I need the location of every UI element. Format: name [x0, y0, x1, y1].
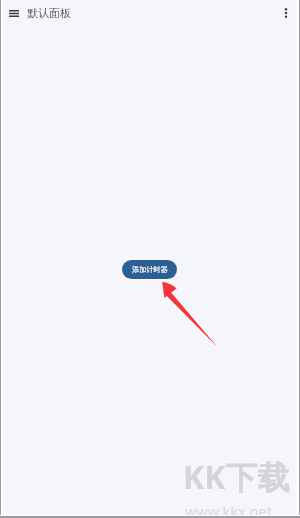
staticText: www.kkx.net	[185, 501, 272, 518]
staticText: KK下载	[183, 455, 290, 499]
staticText: 添加计时器	[132, 265, 168, 274]
button[interactable]: More options	[274, 1, 298, 25]
button[interactable]: 添加计时器	[122, 260, 177, 279]
staticText: 默认面板	[27, 6, 71, 20]
button[interactable]: Menu	[2, 1, 26, 25]
